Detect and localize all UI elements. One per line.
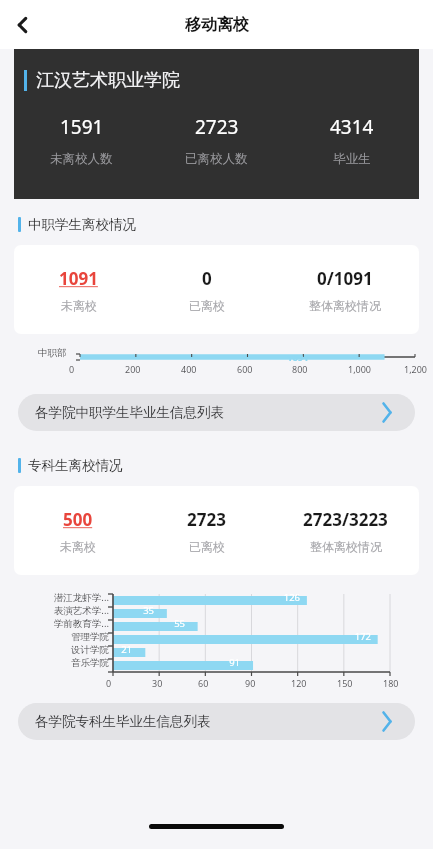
staticText: 音乐学院 — [71, 657, 109, 669]
staticText: 0/1091 — [317, 267, 373, 290]
staticText: 1591 — [60, 114, 104, 140]
staticText: 学前教育学... — [53, 617, 109, 630]
staticText: 潜江龙虾学... — [53, 591, 109, 604]
staticText: 已离校 — [189, 298, 225, 313]
staticText: 0 — [106, 677, 112, 689]
staticText: 未离校 — [60, 539, 96, 554]
staticText: 126 — [283, 591, 300, 604]
staticText: 1091 — [59, 267, 98, 290]
staticText: 200 — [125, 363, 141, 375]
staticText: 21 — [121, 643, 132, 656]
staticText: 60 — [198, 677, 209, 689]
staticText: 整体离校情况 — [310, 539, 382, 554]
staticText: 120 — [291, 677, 307, 689]
staticText: 0 — [202, 267, 212, 290]
staticText: 150 — [337, 677, 353, 689]
staticText: 35 — [143, 604, 154, 617]
staticText: 设计学院 — [71, 644, 109, 656]
staticText: 55 — [174, 617, 185, 630]
button[interactable]: 各学院中职学生毕业生信息列表 — [18, 394, 415, 431]
staticText: 中职学生离校情况 — [28, 216, 136, 233]
staticText: 600 — [237, 363, 253, 375]
staticText: 整体离校情况 — [309, 298, 381, 313]
staticText: 各学院专科生毕业生信息列表 — [35, 713, 211, 730]
staticText: 未离校 — [61, 298, 97, 313]
staticText: 90 — [245, 677, 256, 689]
button[interactable]: 各学院专科生毕业生信息列表 — [18, 703, 415, 740]
staticText: 2723 — [187, 508, 226, 531]
staticText: 1091 — [287, 351, 309, 364]
staticText: 800 — [292, 363, 308, 375]
staticText: 中职部 — [38, 347, 67, 359]
staticText: 移动离校 — [185, 15, 249, 35]
staticText: 0 — [69, 363, 75, 375]
staticText: 未离校人数 — [50, 151, 113, 167]
staticText: 500 — [63, 508, 93, 531]
staticText: 已离校人数 — [185, 151, 248, 167]
staticText: 各学院中职学生毕业生信息列表 — [35, 404, 224, 421]
staticText: 30 — [152, 677, 163, 689]
staticText: 管理学院 — [71, 631, 109, 643]
staticText: 172 — [354, 630, 371, 643]
staticText: 91 — [229, 656, 240, 669]
staticText: 已离校 — [189, 539, 225, 554]
staticText: 400 — [181, 363, 197, 375]
staticText: 表演艺术学... — [53, 604, 109, 617]
staticText: 专科生离校情况 — [28, 457, 123, 474]
staticText: 180 — [383, 677, 399, 689]
button[interactable]: Back — [0, 1, 48, 49]
staticText: 2723 — [195, 114, 239, 140]
staticText: 1,200 — [404, 363, 428, 375]
staticText: 毕业生 — [333, 151, 371, 167]
staticText: 江汉艺术职业学院 — [36, 69, 180, 92]
staticText: 4314 — [330, 114, 374, 140]
staticText: 2723/3223 — [303, 508, 388, 531]
staticText: 1,000 — [348, 363, 372, 375]
